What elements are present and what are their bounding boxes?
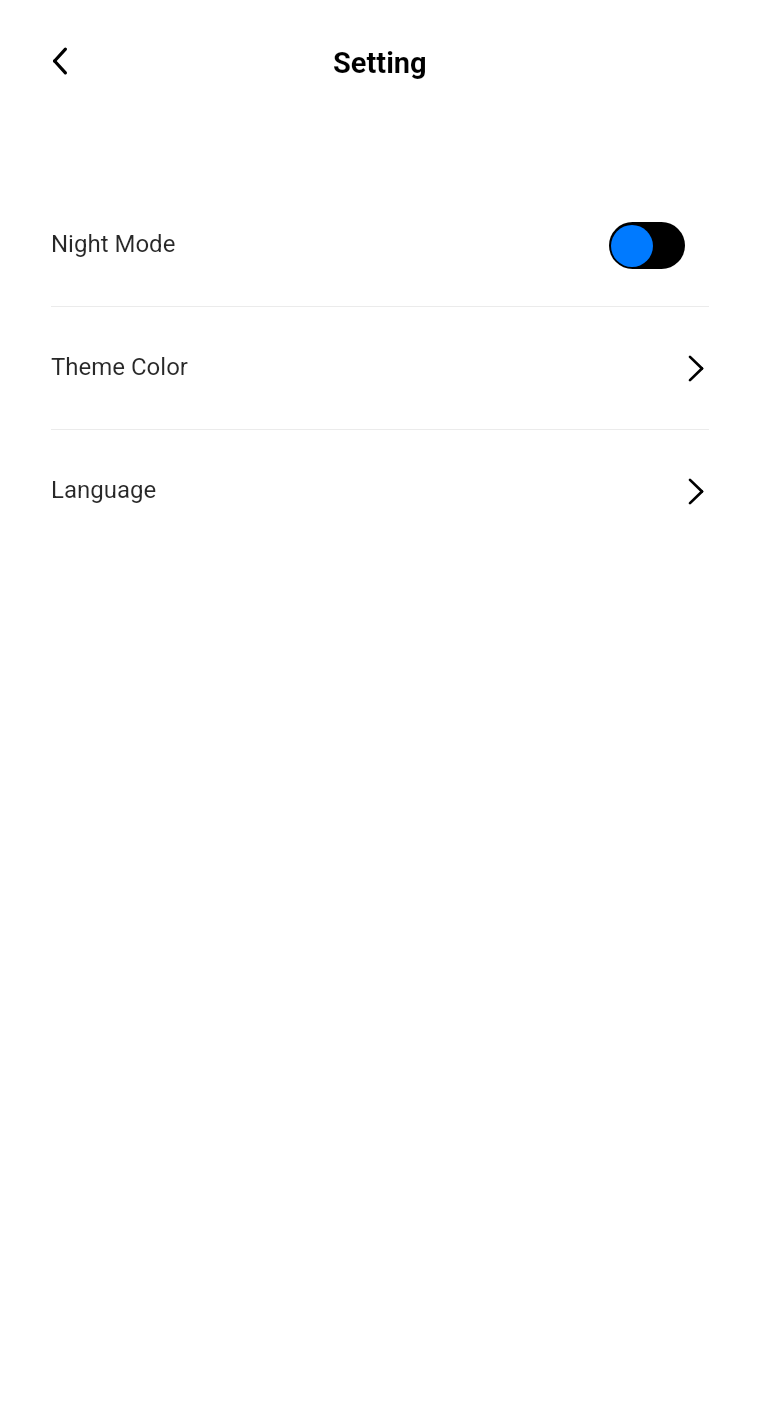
- button[interactable]: Theme Color: [0, 307, 760, 429]
- staticText: Setting: [333, 46, 427, 80]
- staticText: Night Mode: [51, 230, 176, 258]
- button[interactable]: Back: [32, 33, 88, 89]
- button[interactable]: Open Language: [676, 471, 716, 511]
- button[interactable]: Open Theme Color: [676, 348, 716, 388]
- button[interactable]: Night Mode switch: [609, 222, 685, 269]
- button[interactable]: Language: [0, 430, 760, 552]
- staticText: Language: [51, 476, 157, 504]
- staticText: Theme Color: [51, 353, 188, 381]
- button[interactable]: Night Mode: [0, 184, 760, 306]
